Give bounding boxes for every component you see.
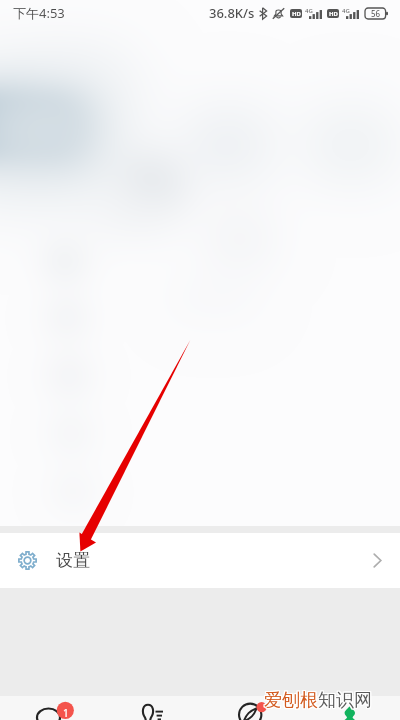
- staticText: 爱刨根: [264, 689, 318, 712]
- staticText: 下午4:53: [13, 4, 65, 22]
- staticText: 爱刨根知识网: [263, 690, 371, 713]
- staticText: 爱刨根知识网: [263, 688, 371, 711]
- staticText: 4G: [305, 7, 313, 15]
- staticText: HD: [292, 10, 301, 18]
- staticText: 知识网: [318, 689, 372, 712]
- staticText: 36.8K/s: [209, 4, 255, 22]
- staticText: 爱刨根知识网: [265, 689, 373, 712]
- staticText: 4G: [342, 7, 350, 15]
- button[interactable]: 设置: [0, 533, 400, 588]
- button[interactable]: Chats: [0, 696, 100, 720]
- staticText: 爱刨根知识网: [264, 688, 372, 711]
- staticText: HD: [329, 10, 338, 18]
- button[interactable]: Contacts: [100, 696, 200, 720]
- staticText: 爱刨根知识网: [265, 690, 373, 713]
- staticText: 1: [63, 706, 69, 720]
- staticText: 爱刨根知识网: [263, 689, 371, 712]
- button[interactable]: Discover: [200, 696, 300, 720]
- staticText: 爱刨根知识网: [264, 690, 372, 713]
- staticText: 56: [371, 8, 381, 19]
- staticText: 爱刨根知识网: [265, 688, 373, 711]
- staticText: 设置: [56, 550, 90, 571]
- button[interactable]: Me: [300, 696, 400, 720]
